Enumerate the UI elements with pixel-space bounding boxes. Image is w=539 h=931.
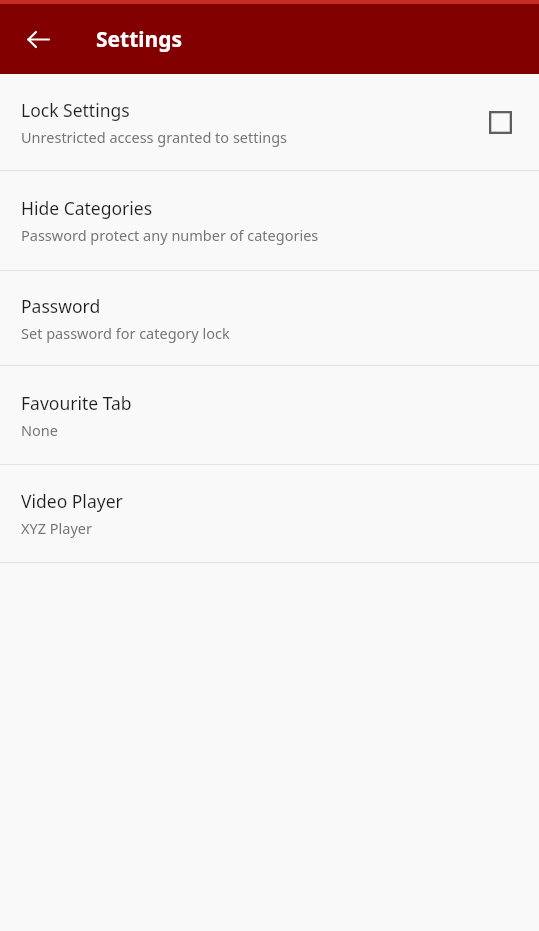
staticText: Hide Categories bbox=[21, 196, 153, 220]
button[interactable]: Hide Categories bbox=[0, 171, 539, 270]
button[interactable]: Back bbox=[16, 17, 60, 61]
button[interactable]: Lock settings checkbox bbox=[479, 101, 521, 143]
staticText: Set password for category lock bbox=[21, 323, 230, 343]
button[interactable]: Lock Settings bbox=[0, 74, 539, 170]
staticText: Lock Settings bbox=[21, 98, 130, 122]
button[interactable]: Password bbox=[0, 271, 539, 365]
staticText: None bbox=[21, 420, 58, 440]
button[interactable]: Favourite Tab bbox=[0, 366, 539, 464]
staticText: Password bbox=[21, 294, 101, 318]
staticText: Favourite Tab bbox=[21, 391, 132, 415]
staticText: Unrestricted access granted to settings bbox=[21, 127, 288, 147]
staticText: XYZ Player bbox=[21, 518, 92, 538]
staticText: Video Player bbox=[21, 489, 123, 513]
staticText: Settings bbox=[96, 25, 183, 54]
button[interactable]: Video Player bbox=[0, 465, 539, 562]
staticText: Password protect any number of categorie… bbox=[21, 225, 319, 245]
